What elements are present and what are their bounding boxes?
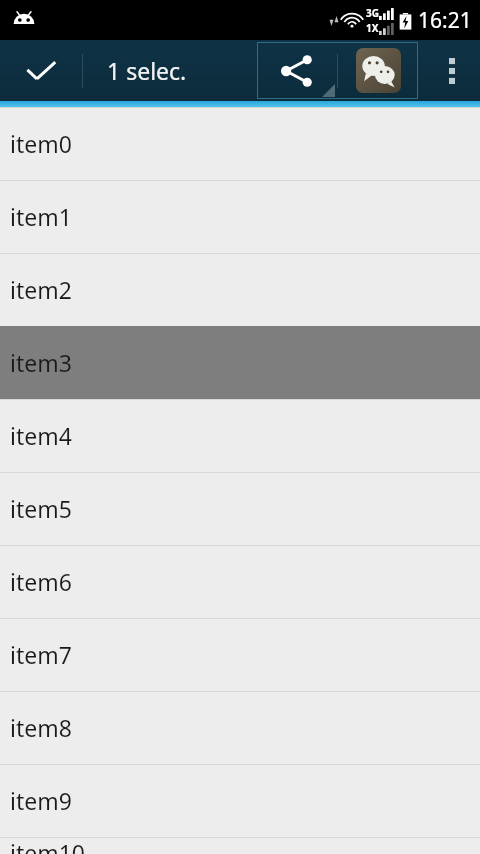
button[interactable]: More options bbox=[424, 40, 480, 101]
staticText: 1 selec. bbox=[107, 55, 187, 86]
staticText: item0 bbox=[10, 128, 72, 159]
button[interactable]: item6 bbox=[0, 545, 480, 618]
staticText: item9 bbox=[10, 785, 72, 816]
button[interactable]: item5 bbox=[0, 472, 480, 545]
staticText: 3G bbox=[366, 6, 379, 20]
staticText: item1 bbox=[10, 201, 72, 232]
staticText: item4 bbox=[10, 420, 72, 451]
staticText: item7 bbox=[10, 639, 72, 670]
staticText: item6 bbox=[10, 566, 72, 597]
button[interactable]: item7 bbox=[0, 618, 480, 691]
staticText: 16:21 bbox=[418, 6, 472, 35]
button[interactable]: Done bbox=[0, 40, 82, 101]
staticText: item2 bbox=[10, 274, 72, 305]
button[interactable]: Share bbox=[257, 42, 337, 99]
button[interactable]: item9 bbox=[0, 764, 480, 837]
staticText: item5 bbox=[10, 493, 72, 524]
button[interactable]: item0 bbox=[0, 107, 480, 180]
button[interactable]: item10 bbox=[0, 837, 480, 854]
staticText: 1X bbox=[366, 21, 379, 35]
staticText: item10 bbox=[10, 837, 86, 854]
button[interactable]: item8 bbox=[0, 691, 480, 764]
button[interactable]: item3 bbox=[0, 326, 480, 399]
button[interactable]: item2 bbox=[0, 253, 480, 326]
button[interactable]: WeChat bbox=[338, 42, 418, 99]
button[interactable]: item4 bbox=[0, 399, 480, 472]
button[interactable]: item1 bbox=[0, 180, 480, 253]
staticText: item3 bbox=[10, 347, 72, 378]
staticText: item8 bbox=[10, 712, 72, 743]
